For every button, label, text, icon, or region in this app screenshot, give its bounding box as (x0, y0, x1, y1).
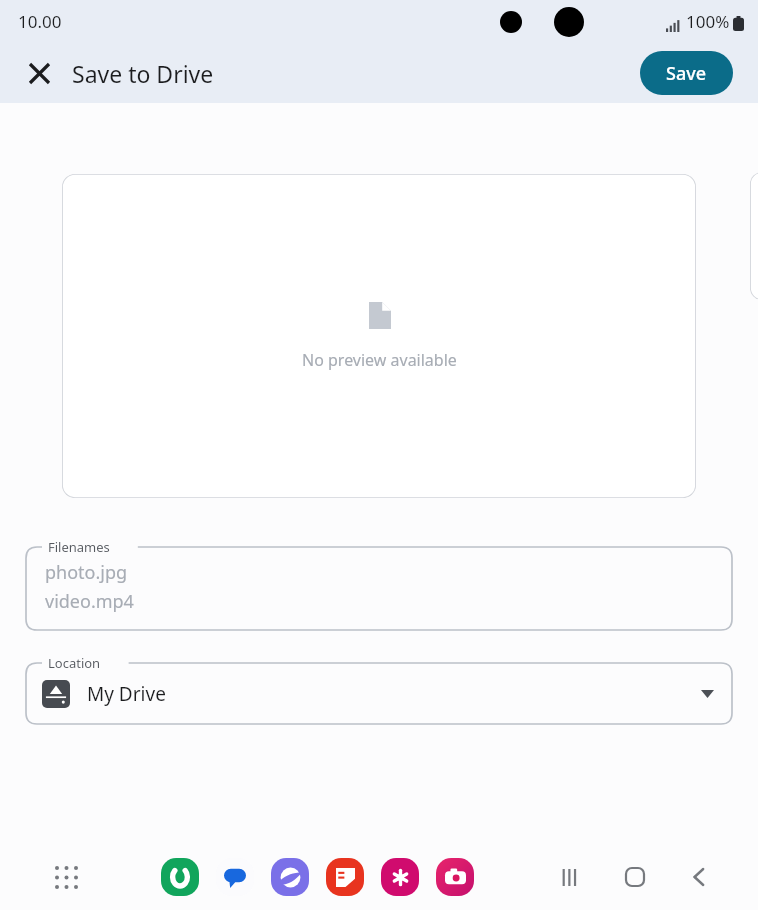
button[interactable]: Notes (326, 858, 364, 896)
staticText: photo.jpg (45, 560, 128, 585)
staticText: My Drive (87, 681, 166, 707)
button[interactable]: Close (16, 50, 62, 96)
staticText: Save to Drive (72, 58, 214, 89)
button[interactable]: Home (615, 857, 655, 897)
staticText: Location (48, 654, 101, 672)
button[interactable]: Apps (46, 857, 86, 897)
staticText: video.mp4 (45, 589, 134, 614)
button[interactable]: Messages (216, 858, 254, 896)
button[interactable]: Phone (161, 858, 199, 896)
staticText: 10.00 (18, 10, 62, 33)
button[interactable]: Back (680, 857, 720, 897)
staticText: No preview available (302, 349, 457, 371)
button[interactable]: Gallery (381, 858, 419, 896)
staticText: Save (666, 61, 707, 86)
button[interactable]: Internet (271, 858, 309, 896)
button[interactable]: Save (640, 51, 733, 95)
staticText: 100% (686, 10, 730, 33)
button[interactable]: Camera (436, 858, 474, 896)
staticText: Filenames (48, 538, 110, 556)
button[interactable]: My Drive (26, 663, 732, 724)
button[interactable]: No preview available (62, 174, 696, 498)
button[interactable]: Recents (550, 857, 590, 897)
